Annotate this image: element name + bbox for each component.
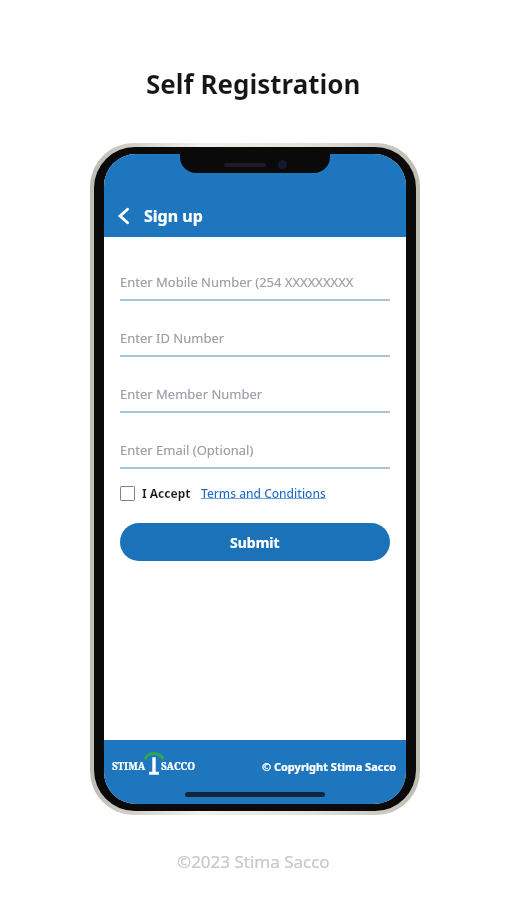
button[interactable]: Stima Sacco logo: [112, 753, 196, 779]
button[interactable]: Submit: [120, 523, 390, 561]
staticText: © Copyright Stima Sacco: [261, 759, 396, 774]
staticText: Enter Mobile Number (254 XXXXXXXXX: [120, 273, 354, 291]
staticText: I Accept: [142, 485, 191, 501]
button[interactable]: Back: [104, 195, 217, 237]
button[interactable]: Enter Mobile Number (254 XXXXXXXXX: [120, 265, 390, 301]
staticText: Enter ID Number: [120, 329, 225, 347]
button[interactable]: Enter Member Number: [120, 377, 390, 413]
staticText: Sign up: [144, 205, 203, 227]
staticText: Enter Email (Optional): [120, 441, 254, 459]
staticText: Terms and Conditions: [201, 485, 326, 501]
button[interactable]: Enter ID Number: [120, 321, 390, 357]
staticText: ©2023 Stima Sacco: [177, 850, 330, 873]
staticText: Self Registration: [146, 66, 361, 101]
staticText: Enter Member Number: [120, 385, 263, 403]
other: Back: [114, 206, 134, 226]
button[interactable]: I Accept: [120, 481, 326, 505]
button[interactable]: Terms and Conditions: [201, 485, 326, 501]
staticText: SACCO: [161, 759, 196, 773]
button[interactable]: Enter Email (Optional): [120, 433, 390, 469]
staticText: Submit: [230, 533, 280, 552]
staticText: STIMA: [112, 759, 146, 773]
